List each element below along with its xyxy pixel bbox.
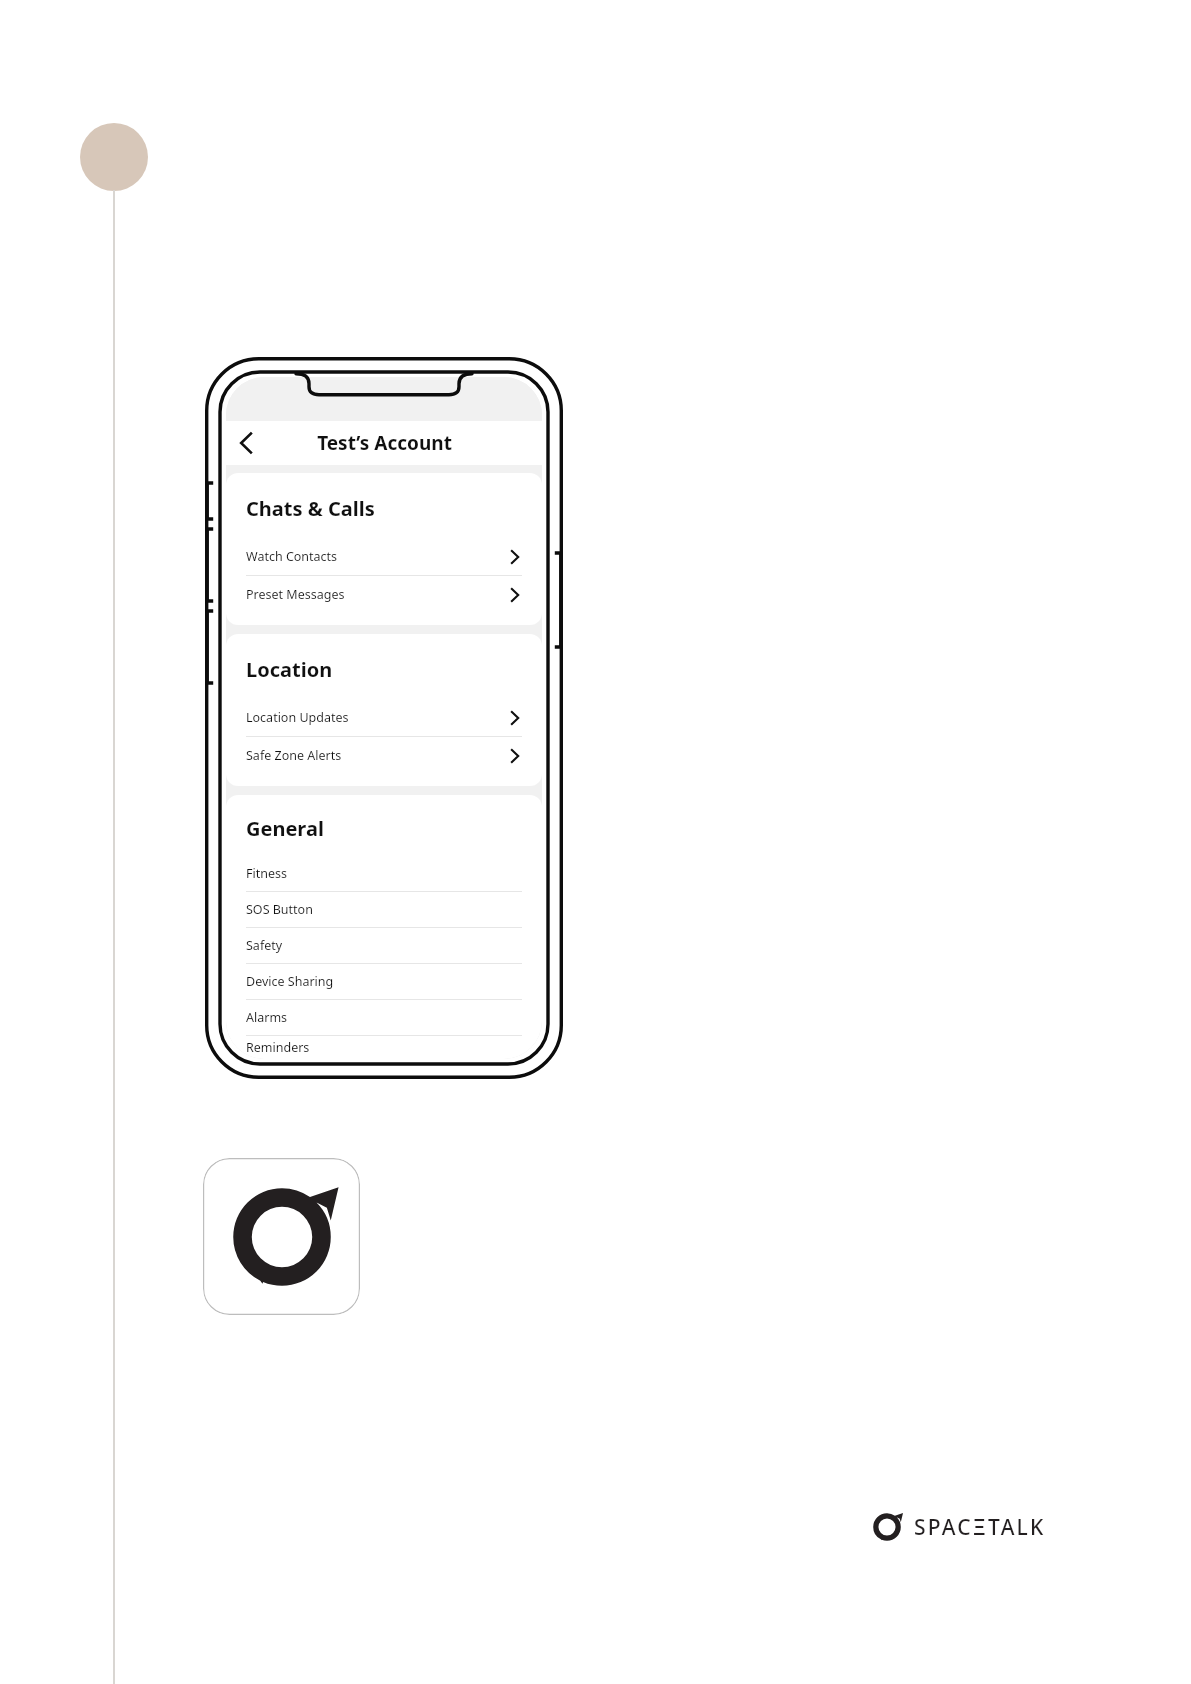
staticText: Fitness <box>246 865 522 882</box>
button[interactable]: Spacetalk app icon <box>203 1158 360 1315</box>
button[interactable]: Device Sharing <box>246 964 522 999</box>
staticText: Watch Contacts <box>246 548 506 565</box>
button[interactable]: Location Updates <box>246 699 522 736</box>
staticText: Reminders <box>246 1039 522 1056</box>
staticText: Test’s Account <box>317 430 452 456</box>
staticText: General <box>246 815 324 842</box>
staticText: Safe Zone Alerts <box>246 747 506 764</box>
button[interactable]: Back <box>230 426 264 460</box>
button[interactable]: Spacetalk <box>872 1512 1046 1542</box>
button[interactable]: Fitness <box>246 856 522 891</box>
staticText: SOS Button <box>246 901 522 918</box>
button[interactable]: Alarms <box>246 1000 522 1035</box>
staticText: Device Sharing <box>246 973 522 990</box>
button[interactable]: Safety <box>246 928 522 963</box>
button[interactable]: Preset Messages <box>246 576 522 613</box>
staticText: Preset Messages <box>246 586 506 603</box>
staticText: SPACΞTALK <box>914 1513 1046 1542</box>
staticText: Safety <box>246 937 522 954</box>
button[interactable]: Reminders <box>246 1036 522 1059</box>
staticText: Chats & Calls <box>246 495 375 522</box>
button[interactable]: SOS Button <box>246 892 522 927</box>
button[interactable]: Watch Contacts <box>246 538 522 575</box>
button[interactable]: Safe Zone Alerts <box>246 737 522 774</box>
staticText: Location Updates <box>246 709 506 726</box>
staticText: Location <box>246 656 333 683</box>
staticText: Alarms <box>246 1009 522 1026</box>
